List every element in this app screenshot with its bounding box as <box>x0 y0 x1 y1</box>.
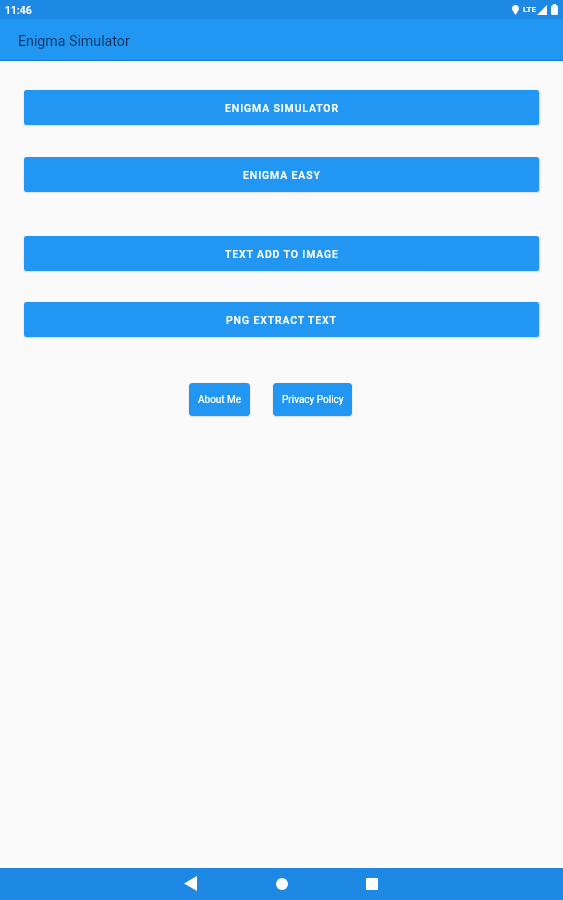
staticText: TEXT ADD TO IMAGE <box>225 248 339 260</box>
staticText: ENIGMA SIMULATOR <box>225 102 339 114</box>
button[interactable]: ENIGMA SIMULATOR <box>24 90 539 125</box>
staticText: About Me <box>198 394 242 406</box>
staticText: 11:46 <box>5 4 32 16</box>
staticText: PNG EXTRACT TEXT <box>226 314 337 326</box>
staticText: Enigma Simulator <box>18 33 130 50</box>
staticText: ENIGMA EASY <box>243 169 321 181</box>
button[interactable]: Back <box>160 868 220 900</box>
button[interactable]: ENIGMA EASY <box>24 157 539 192</box>
button[interactable]: Home <box>252 868 312 900</box>
button[interactable]: Privacy Policy <box>273 383 352 416</box>
staticText: Privacy Policy <box>282 394 344 406</box>
button[interactable]: Recent apps <box>342 868 402 900</box>
button[interactable]: PNG EXTRACT TEXT <box>24 302 539 337</box>
button[interactable]: About Me <box>189 383 250 416</box>
staticText: LTE <box>523 5 536 14</box>
button[interactable]: TEXT ADD TO IMAGE <box>24 236 539 271</box>
